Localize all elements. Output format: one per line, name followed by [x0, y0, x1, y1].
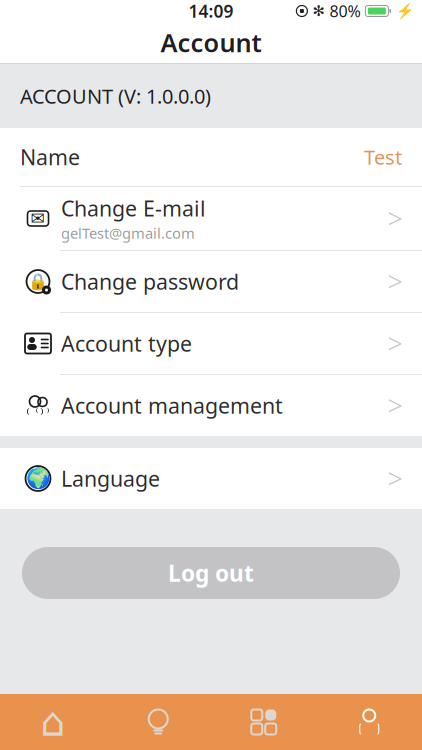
button[interactable]: 🌍	[0, 448, 422, 509]
button[interactable]: Account type	[0, 313, 422, 374]
staticText: Language	[61, 464, 160, 493]
button[interactable]: Home	[0, 707, 105, 737]
staticText: >	[387, 388, 402, 423]
staticText: Account	[160, 26, 261, 59]
staticText: >	[387, 326, 402, 361]
staticText: ✻	[312, 3, 324, 19]
staticText: >	[387, 461, 402, 496]
button[interactable]: Account management	[0, 375, 422, 436]
staticText: Name	[20, 143, 80, 171]
staticText: >	[387, 201, 402, 236]
staticText: >	[387, 264, 402, 299]
button[interactable]: Apps	[211, 707, 316, 737]
button[interactable]: Ideas	[105, 707, 211, 737]
staticText: Account management	[61, 391, 283, 420]
button[interactable]: ✉	[0, 187, 422, 250]
staticText: gelTest@gmail.com	[61, 223, 195, 243]
staticText: 80%	[329, 0, 360, 22]
button[interactable]: 🔒	[0, 251, 422, 312]
staticText: 14:09	[188, 0, 233, 22]
staticText: ACCOUNT (V: 1.0.0.0)	[20, 83, 211, 109]
staticText: Change E-mail	[61, 194, 206, 222]
staticText: ✉	[30, 209, 45, 228]
staticText: Log out	[168, 558, 254, 588]
staticText: 🔒	[28, 272, 48, 291]
staticText: Test	[364, 144, 402, 170]
staticText: Change password	[61, 267, 239, 296]
button[interactable]: Account	[316, 707, 422, 737]
staticText: 🌍	[25, 467, 50, 490]
staticText: ⚡	[396, 3, 414, 19]
staticText: ⌂	[40, 699, 65, 745]
staticText: Account type	[61, 329, 192, 358]
button[interactable]: Name	[0, 128, 422, 186]
button[interactable]: Log out	[0, 547, 422, 599]
